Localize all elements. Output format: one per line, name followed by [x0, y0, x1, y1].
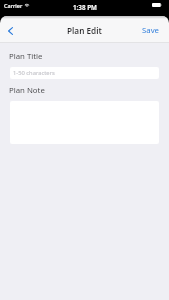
staticText: Save [142, 25, 160, 36]
staticText: 1-50 characters [13, 69, 55, 77]
staticText: Plan Title [9, 51, 43, 62]
button[interactable]: Back [0, 19, 20, 41]
button[interactable]: 1-50 characters [10, 67, 159, 79]
staticText: Carrier [4, 2, 23, 9]
staticText: 1:38 PM [73, 3, 97, 12]
button[interactable]: Save [134, 20, 169, 39]
staticText: Plan Edit [67, 25, 102, 36]
staticText: Plan Note [9, 85, 45, 96]
